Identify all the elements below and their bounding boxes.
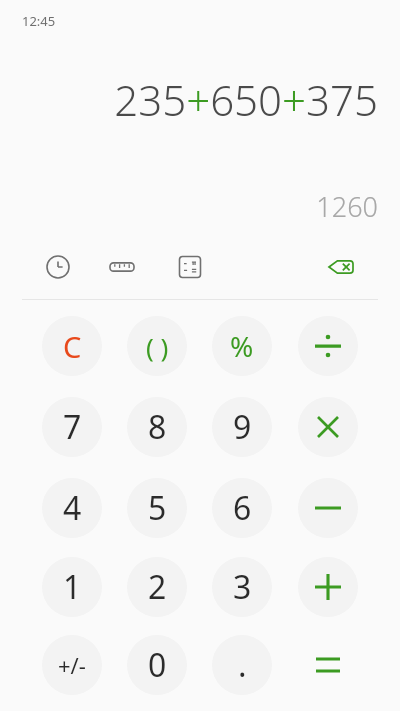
button[interactable]: Multiply [298,397,358,457]
staticText: C [63,327,82,366]
staticText: +/- [58,650,86,680]
staticText: ( ) [146,329,169,364]
button[interactable]: 3 [212,557,272,617]
staticText: 1260 [0,188,378,225]
staticText: 12:45 [22,12,56,30]
button[interactable]: . [212,635,272,695]
staticText: 3 [233,565,252,609]
button[interactable]: 5 [127,478,187,538]
button[interactable]: Divide [298,316,358,376]
staticText: . [238,643,247,687]
button[interactable]: 7 [42,397,102,457]
button[interactable]: 9 [212,397,272,457]
button[interactable]: Subtract [298,478,358,538]
button[interactable]: History [36,245,80,289]
button[interactable]: ( ) [127,316,187,376]
button[interactable]: 8 [127,397,187,457]
staticText: 5 [148,486,167,530]
button[interactable]: 2 [127,557,187,617]
staticText: 1 [63,565,82,609]
button[interactable]: Scientific calculator [168,245,212,289]
staticText: 8 [148,405,167,449]
button[interactable]: Equals [298,635,358,695]
staticText: 4 [63,486,82,530]
staticText: 7 [63,405,82,449]
button[interactable]: C [42,316,102,376]
button[interactable]: % [212,316,272,376]
button[interactable]: Backspace [319,245,363,289]
staticText: 0 [148,643,167,687]
button[interactable]: 1 [42,557,102,617]
button[interactable]: Unit converter [100,245,144,289]
button[interactable]: 4 [42,478,102,538]
staticText: 2 [148,565,167,609]
button[interactable]: 0 [127,635,187,695]
button[interactable]: 6 [212,478,272,538]
staticText: 6 [233,486,252,530]
staticText: 9 [233,405,252,449]
button[interactable]: +/- [42,635,102,695]
staticText: % [230,327,254,365]
button[interactable]: Add [298,557,358,617]
staticText: 235+650+375 [0,71,378,128]
